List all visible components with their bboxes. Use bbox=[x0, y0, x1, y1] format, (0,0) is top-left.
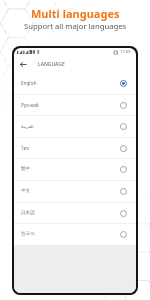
staticText: LANGUAGE bbox=[38, 61, 65, 68]
staticText: العربية bbox=[21, 124, 34, 129]
button[interactable]: 繁中 bbox=[14, 158, 136, 180]
button[interactable]: English bbox=[14, 72, 136, 94]
button[interactable]: 日本語 bbox=[14, 202, 136, 224]
staticText: 日本語 bbox=[21, 210, 35, 216]
button[interactable]: Back bbox=[18, 59, 29, 70]
staticText: 17:05 bbox=[120, 49, 131, 55]
staticText: 한국어 bbox=[21, 231, 35, 237]
staticText: English bbox=[21, 80, 37, 86]
button[interactable]: العربية bbox=[14, 115, 136, 137]
button[interactable]: Русский bbox=[14, 94, 136, 116]
staticText: 繁中 bbox=[21, 166, 31, 172]
staticText: ไทย bbox=[21, 145, 30, 152]
staticText: Multi languages bbox=[31, 6, 120, 21]
staticText: 中文 bbox=[21, 188, 31, 194]
button[interactable]: ไทย bbox=[14, 137, 136, 159]
button[interactable]: 한국어 bbox=[14, 223, 136, 245]
staticText: Support all major languages bbox=[24, 21, 127, 31]
staticText: Русский bbox=[21, 102, 39, 108]
button[interactable]: 中文 bbox=[14, 180, 136, 202]
